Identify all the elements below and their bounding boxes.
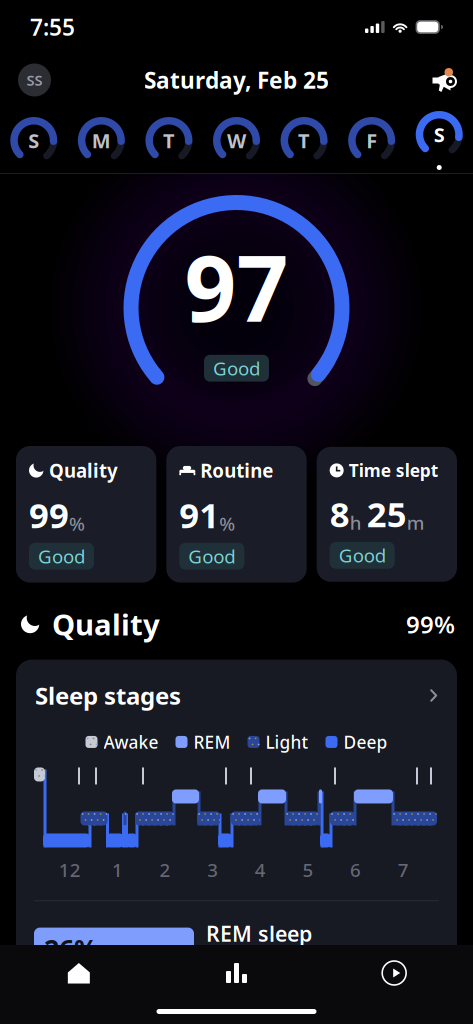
staticText: S	[28, 127, 39, 154]
staticText: Light	[265, 730, 308, 753]
button[interactable]: Announcements	[431, 67, 455, 93]
staticText: T	[298, 127, 310, 154]
staticText: 2h 12m	[206, 950, 283, 978]
staticText: Saturday, Feb 25	[144, 65, 329, 95]
staticText: Good	[188, 544, 235, 569]
staticText: 6	[350, 857, 361, 882]
staticText: W	[227, 127, 246, 154]
button[interactable]: Play	[315, 961, 473, 985]
button[interactable]: Routine	[166, 446, 307, 583]
button[interactable]: Time slept	[317, 447, 457, 582]
staticText: M	[92, 127, 111, 154]
staticText: 12	[59, 857, 81, 882]
staticText: T	[163, 127, 175, 154]
staticText: S	[434, 121, 445, 148]
staticText: 7:55	[30, 12, 75, 42]
button[interactable]: Statistics	[158, 963, 315, 983]
staticText: 99%	[406, 608, 455, 640]
staticText: REM	[193, 730, 230, 753]
button[interactable]: Sleep stages	[16, 660, 457, 730]
staticText: m	[407, 510, 425, 535]
staticText: %	[219, 511, 235, 536]
staticText: 8	[330, 491, 350, 537]
staticText: Quality	[49, 458, 118, 483]
staticText: 91	[179, 492, 219, 538]
staticText: Good	[38, 544, 85, 569]
staticText: F	[366, 127, 377, 154]
staticText: Routine	[200, 458, 273, 483]
staticText: 5	[302, 857, 313, 882]
staticText: 97	[184, 226, 288, 347]
staticText: Awake	[103, 730, 158, 753]
staticText: Sleep stages	[35, 680, 181, 711]
staticText: 7	[398, 857, 409, 882]
staticText: 25	[367, 491, 407, 537]
button[interactable]: Quality	[16, 446, 156, 583]
staticText: 26%	[44, 931, 98, 966]
staticText: 99	[29, 492, 69, 538]
staticText: Quality	[52, 605, 160, 644]
button[interactable]: Profile	[18, 63, 51, 96]
staticText: SS	[26, 70, 42, 90]
staticText: %	[69, 511, 85, 536]
staticText: 4	[255, 857, 266, 882]
staticText: 1	[112, 857, 123, 882]
staticText: Good	[339, 543, 386, 568]
staticText: 3	[207, 857, 218, 882]
staticText: Time slept	[349, 459, 439, 482]
staticText: h	[350, 510, 362, 535]
staticText: Good	[213, 356, 260, 381]
staticText: 2	[160, 857, 171, 882]
staticText: REM sleep	[206, 919, 312, 947]
staticText: Deep	[343, 730, 387, 753]
button[interactable]: Home	[0, 962, 158, 983]
